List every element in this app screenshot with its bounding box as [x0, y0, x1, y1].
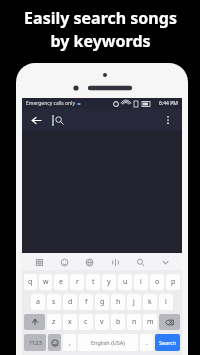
staticText: q [28, 277, 33, 287]
button[interactable]: n [127, 314, 141, 330]
button[interactable]: Back [28, 112, 44, 128]
button[interactable]: a [31, 294, 45, 310]
staticText: k [148, 297, 152, 307]
staticText: i [140, 277, 142, 287]
staticText: s [52, 297, 56, 307]
staticText: z [52, 317, 56, 327]
staticText: p [171, 277, 176, 287]
button[interactable]: . [140, 334, 153, 351]
staticText: r [76, 277, 79, 287]
staticText: l [165, 297, 167, 307]
button[interactable]: c [79, 314, 93, 330]
button[interactable]: u [118, 274, 132, 290]
button[interactable]: k [143, 294, 157, 310]
staticText: y [107, 277, 111, 287]
staticText: h [116, 297, 121, 307]
staticText: Easily search songs [24, 7, 177, 29]
button[interactable]: d [63, 294, 77, 310]
button[interactable]: English (USA) [78, 334, 138, 351]
button[interactable]: Emoji [56, 254, 72, 270]
button[interactable]: Language [81, 254, 97, 270]
button[interactable]: v [95, 314, 109, 330]
staticText: , [69, 338, 71, 348]
staticText: v [100, 317, 104, 327]
staticText: t [92, 277, 95, 287]
staticText: English (USA) [91, 339, 125, 346]
staticText: ?123 [29, 339, 42, 347]
staticText: j [133, 297, 135, 307]
button[interactable]: Backspace [159, 314, 180, 330]
staticText: x [68, 317, 72, 327]
staticText: g [100, 297, 105, 307]
button[interactable]: y [102, 274, 116, 290]
button[interactable]: i [134, 274, 148, 290]
button[interactable]: w [39, 274, 52, 290]
staticText: . [146, 338, 148, 348]
staticText: by keywords [50, 30, 151, 52]
staticText: b [116, 317, 121, 327]
staticText: u [123, 277, 128, 287]
staticText: 6:44 PM [159, 100, 178, 107]
staticText: d [68, 297, 73, 307]
staticText: n [132, 317, 137, 327]
button[interactable]: g [95, 294, 109, 310]
button[interactable]: b [111, 314, 125, 330]
button[interactable]: Shift [24, 314, 45, 330]
button[interactable]: x [63, 314, 77, 330]
button[interactable]: r [70, 274, 84, 290]
button[interactable]: ?123 [24, 334, 46, 351]
button[interactable]: Search [155, 334, 180, 351]
button[interactable]: Search [132, 254, 148, 270]
button[interactable]: Settings [107, 254, 123, 270]
button[interactable]: e [54, 274, 68, 290]
staticText: o [155, 277, 160, 287]
staticText: Search [159, 339, 177, 346]
staticText: a [36, 297, 40, 307]
button[interactable]: Clipboard [31, 254, 47, 270]
staticText: f [85, 297, 88, 307]
button[interactable]: o [150, 274, 164, 290]
staticText: c [84, 317, 88, 327]
button[interactable]: , [63, 334, 76, 351]
button[interactable]: Collapse keyboard [157, 254, 173, 270]
staticText: w [43, 277, 49, 287]
button[interactable]: More options [160, 112, 176, 128]
button[interactable]: l [159, 294, 173, 310]
staticText: Emergency calls only [26, 100, 75, 107]
button[interactable]: j [127, 294, 141, 310]
button[interactable]: Emoji [48, 334, 61, 351]
button[interactable]: z [47, 314, 61, 330]
button[interactable]: p [166, 274, 180, 290]
button[interactable]: f [79, 294, 93, 310]
button[interactable]: q [24, 274, 37, 290]
button[interactable]: s [47, 294, 61, 310]
button[interactable]: h [111, 294, 125, 310]
button[interactable]: m [143, 314, 157, 330]
button[interactable] [52, 109, 160, 131]
staticText: m [147, 317, 154, 327]
button[interactable]: t [86, 274, 100, 290]
staticText: e [59, 277, 63, 287]
